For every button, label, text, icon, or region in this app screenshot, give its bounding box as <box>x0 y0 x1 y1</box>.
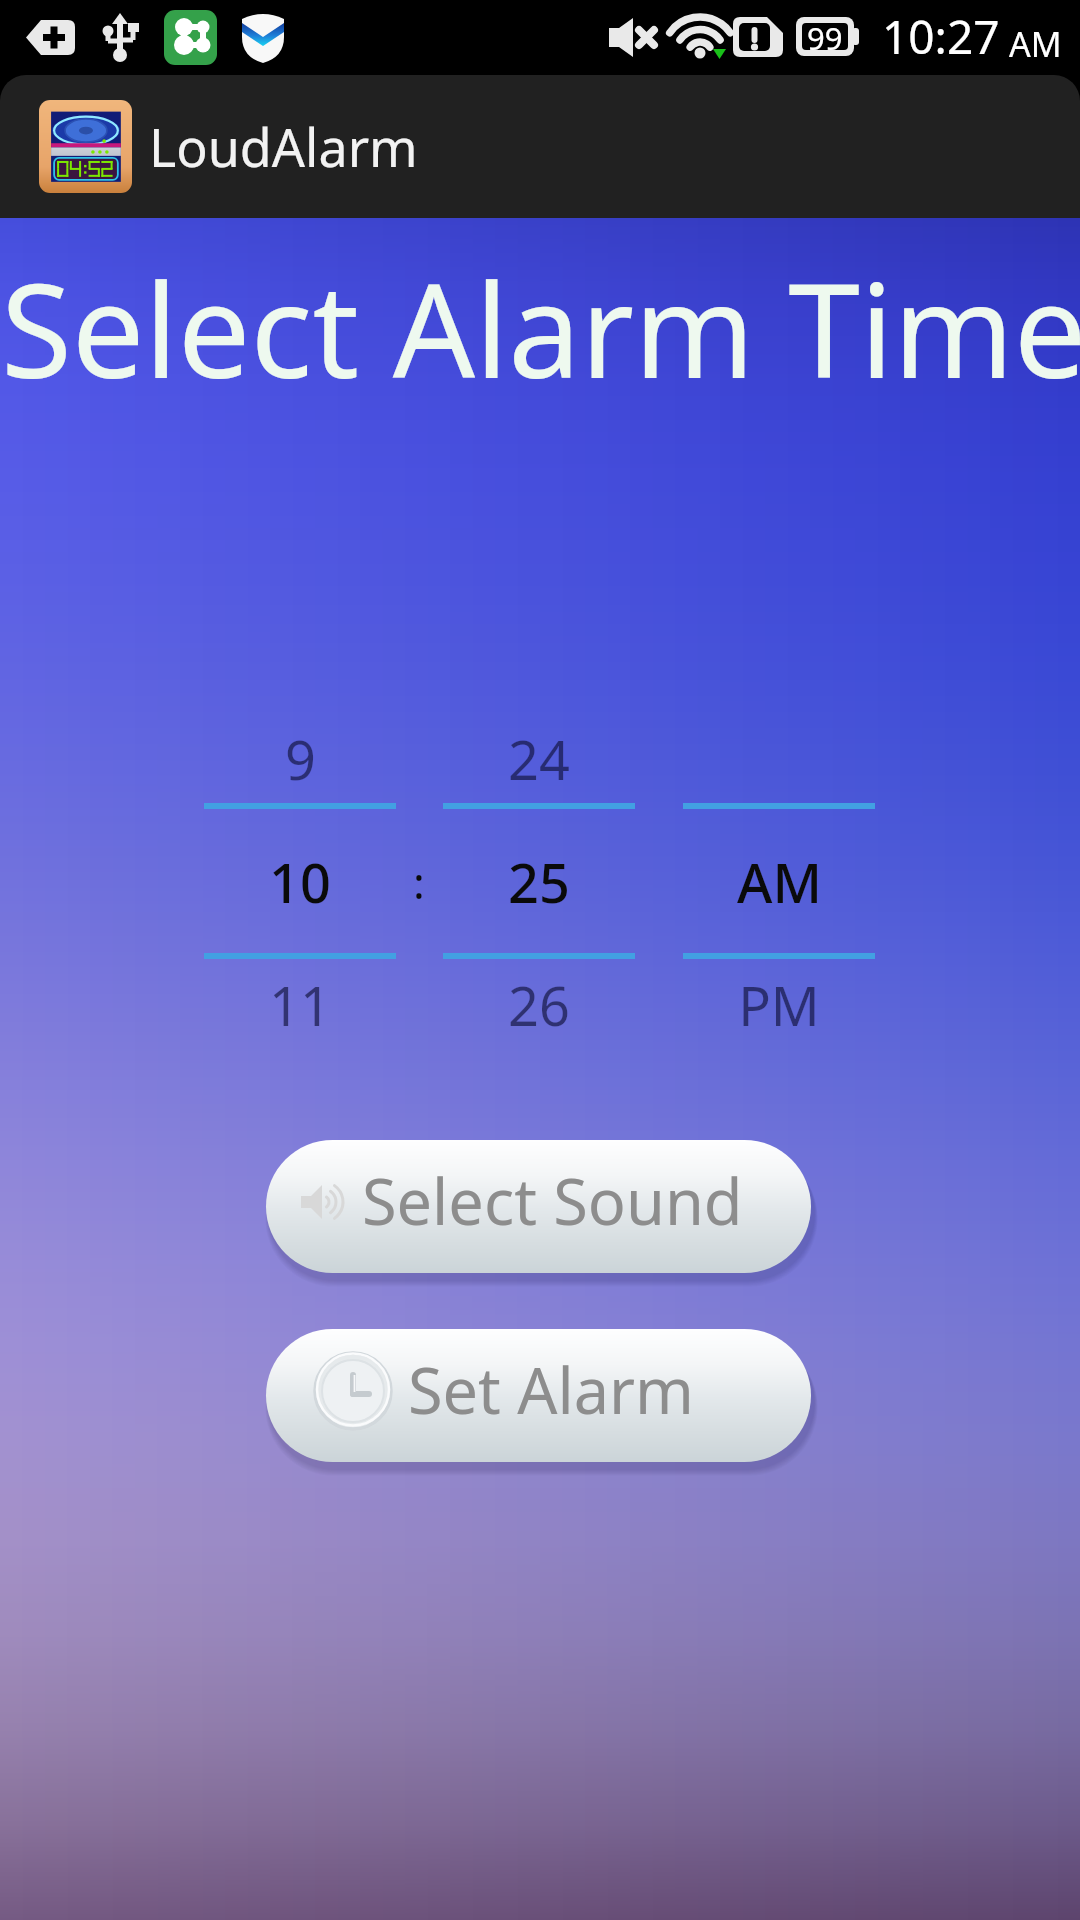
staticText: 10 <box>269 845 331 919</box>
button[interactable]: Set Alarm <box>266 1329 823 1480</box>
button[interactable]: Select Sound <box>266 1140 823 1291</box>
staticText: 24 <box>508 722 570 796</box>
button[interactable]: 10 <box>200 845 400 919</box>
staticText: 10:27 <box>882 5 1000 68</box>
staticText: Set Alarm <box>408 1347 695 1433</box>
button[interactable]: PM <box>679 968 879 1042</box>
staticText: PM <box>738 968 820 1042</box>
button[interactable]: App icon <box>0 75 1080 218</box>
button[interactable]: 11 <box>200 968 400 1042</box>
staticText: 11 <box>269 968 331 1042</box>
staticText: 25 <box>508 845 570 919</box>
staticText: 26 <box>508 968 570 1042</box>
staticText: : <box>413 852 425 912</box>
staticText: 9 <box>285 722 316 796</box>
other: App icon <box>39 100 132 193</box>
button[interactable]: 25 <box>439 845 639 919</box>
button[interactable]: 26 <box>439 968 639 1042</box>
staticText: LoudAlarm <box>149 111 418 182</box>
button[interactable]: 9 <box>200 722 400 796</box>
staticText: Select Sound <box>362 1158 743 1244</box>
button[interactable]: AM <box>679 845 879 919</box>
staticText: 99 <box>807 17 843 59</box>
staticText: AM <box>1009 21 1062 67</box>
button[interactable]: 24 <box>439 722 639 796</box>
staticText: Select Alarm Time <box>1 240 1080 416</box>
button[interactable]: : <box>319 852 519 926</box>
staticText: AM <box>737 845 822 919</box>
